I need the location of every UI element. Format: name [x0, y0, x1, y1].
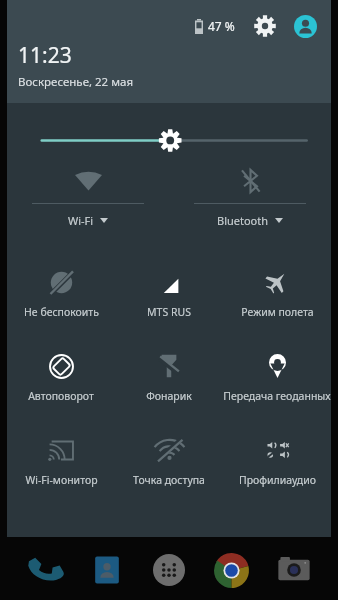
button[interactable]: Фонарик — [115, 337, 223, 421]
staticText: Режим полета — [241, 305, 314, 319]
staticText: Bluetooth — [217, 213, 269, 228]
button[interactable]: Wi-Fi-монитор — [7, 421, 115, 505]
button[interactable]: All apps — [145, 546, 193, 594]
button[interactable]: Режим полета — [223, 253, 331, 337]
staticText: Не беспокоить — [24, 305, 99, 319]
button[interactable]: Автоповорот — [7, 337, 115, 421]
staticText: Точка доступа — [133, 473, 205, 487]
staticText: Воскресенье, 22 мая — [18, 74, 134, 90]
button[interactable]: Brightness slider — [7, 103, 331, 155]
button[interactable]: Settings — [251, 12, 279, 40]
button[interactable]: Wi-Fi — [7, 155, 169, 239]
staticText: 11:23 — [18, 41, 72, 70]
button[interactable]: Bluetooth — [169, 155, 331, 239]
staticText: Фонарик — [146, 389, 192, 403]
staticText: Wi-Fi-монитор — [25, 473, 98, 487]
staticText: MTS RUS — [147, 305, 191, 319]
button[interactable]: MTS RUS — [115, 253, 223, 337]
staticText: Передача геоданных — [223, 389, 331, 403]
button[interactable]: Phone — [20, 546, 68, 594]
button[interactable]: User profile — [291, 12, 319, 40]
staticText: Wi-Fi — [68, 213, 94, 228]
staticText: Профилиаудио — [239, 473, 316, 487]
button[interactable]: Camera — [270, 546, 318, 594]
button[interactable]: Chrome — [207, 546, 255, 594]
staticText: 47 % — [208, 18, 235, 34]
button[interactable]: Contacts — [83, 546, 131, 594]
button[interactable]: Передача геоданных — [223, 337, 331, 421]
button[interactable]: Профилиаудио — [223, 421, 331, 505]
staticText: Автоповорот — [28, 389, 94, 403]
button[interactable]: Точка доступа — [115, 421, 223, 505]
button[interactable]: Не беспокоить — [7, 253, 115, 337]
